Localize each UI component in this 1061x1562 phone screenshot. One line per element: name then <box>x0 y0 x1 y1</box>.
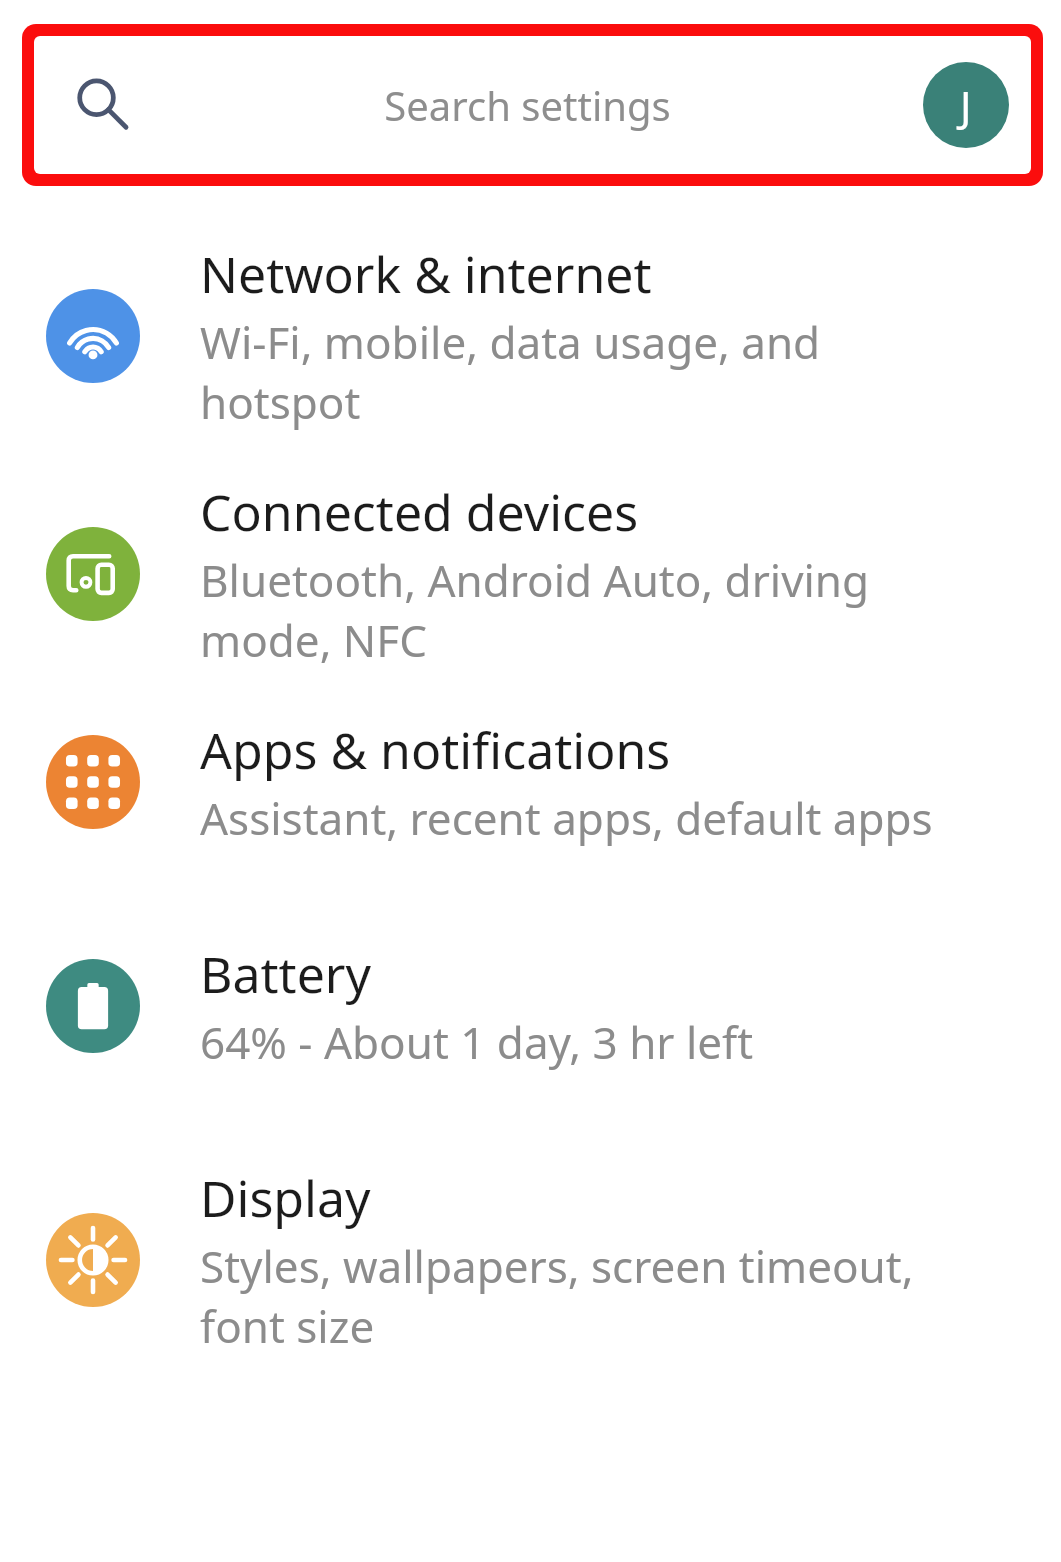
staticText: Search settings <box>384 78 671 132</box>
button[interactable]: Connected devices <box>0 478 1061 670</box>
button[interactable]: Battery <box>0 940 1061 1072</box>
button[interactable]: Display <box>0 1164 1061 1356</box>
button[interactable]: Apps & notifications <box>0 716 1061 848</box>
staticText: Wi-Fi, mobile, data usage, and hotspot <box>200 312 991 432</box>
staticText: Connected devices <box>200 478 639 546</box>
staticText: Display <box>200 1164 371 1232</box>
button[interactable]: Search <box>34 36 1031 174</box>
staticText: Network & internet <box>200 240 652 308</box>
staticText: Assistant, recent apps, default apps <box>200 788 933 848</box>
staticText: 64% - About 1 day, 3 hr left <box>200 1012 754 1072</box>
other: Search <box>70 74 132 136</box>
staticText: Styles, wallpapers, screen timeout, font… <box>200 1236 991 1356</box>
staticText: Apps & notifications <box>200 716 671 784</box>
button[interactable]: Network & internet <box>0 240 1061 432</box>
staticText: Bluetooth, Android Auto, driving mode, N… <box>200 550 991 670</box>
staticText: Battery <box>200 940 371 1008</box>
staticText: J <box>960 77 972 134</box>
button[interactable]: Account profile <box>923 62 1009 148</box>
